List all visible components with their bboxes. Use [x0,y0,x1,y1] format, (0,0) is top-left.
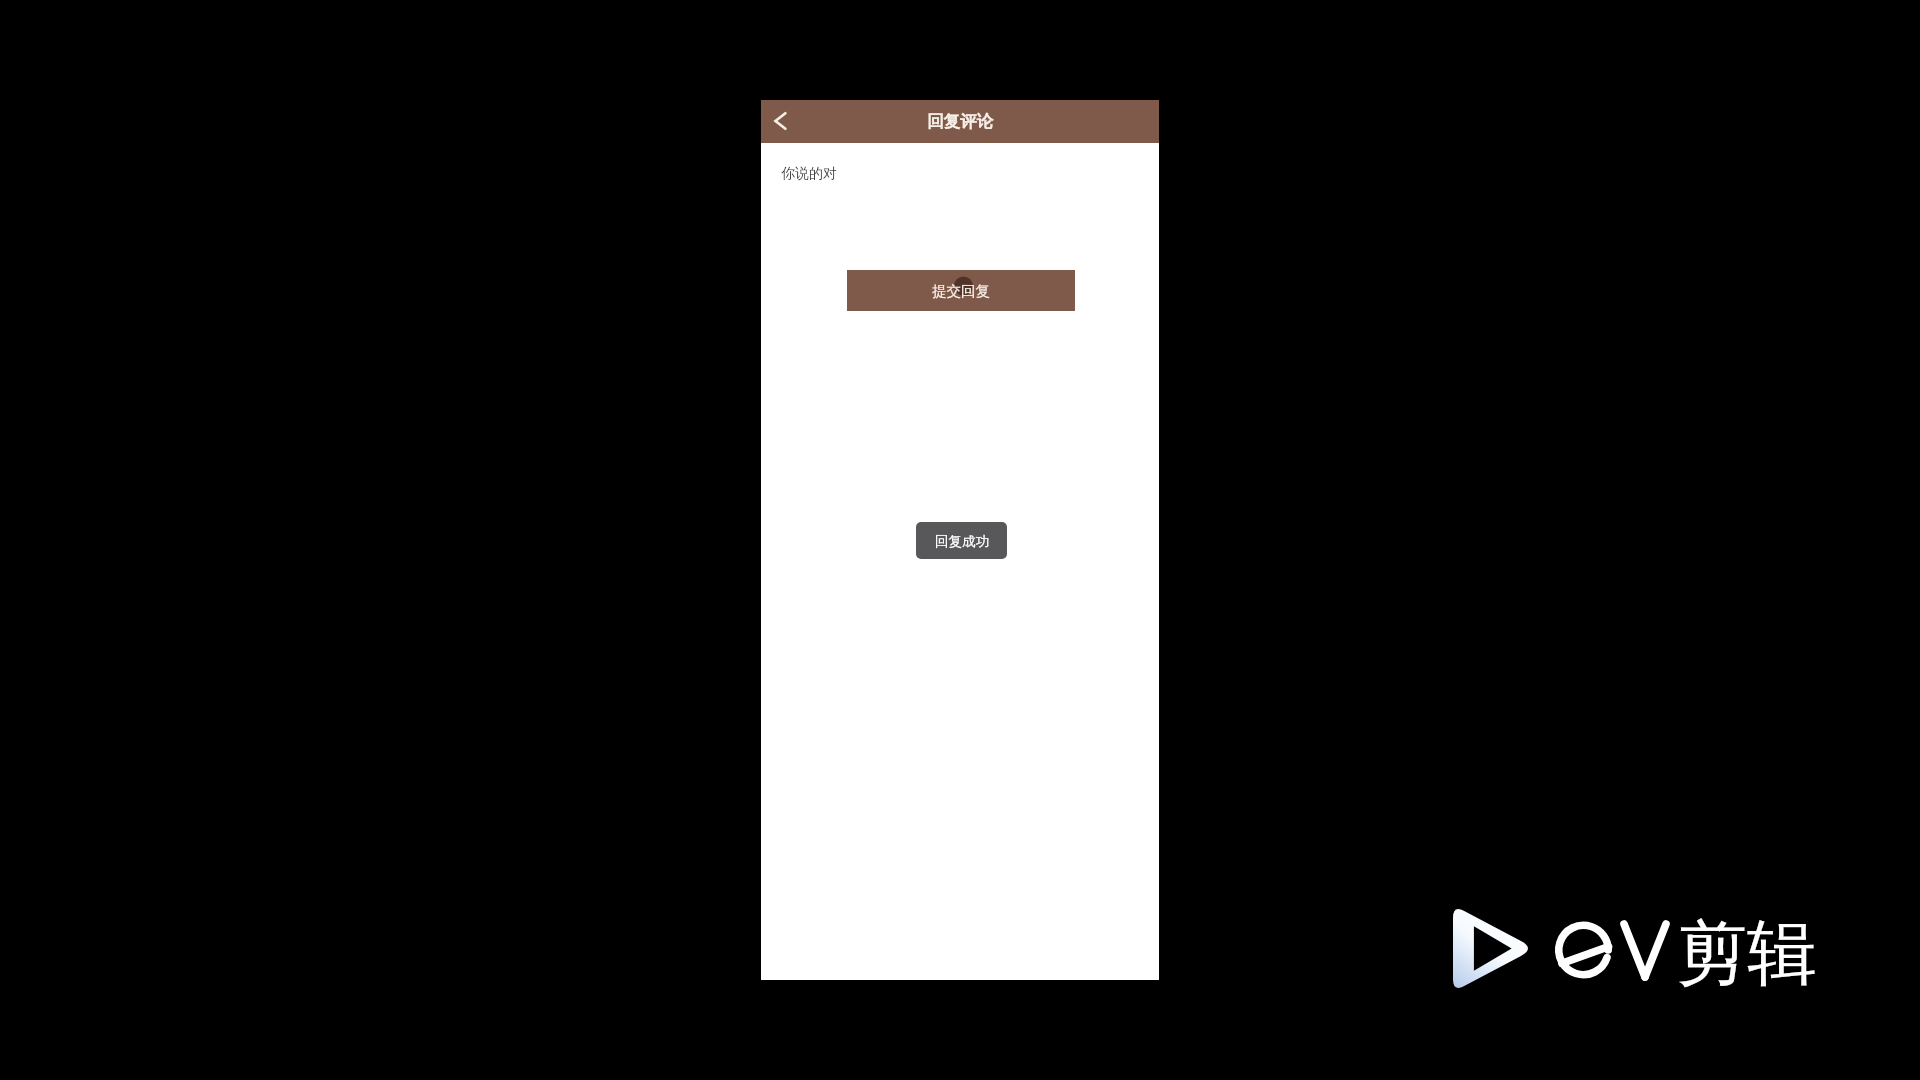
button[interactable]: 提交回复 [847,270,1075,311]
staticText: 回复评论 [927,111,993,132]
staticText: 回复成功 [935,533,989,550]
staticText: 剪辑 [1677,910,1817,998]
staticText: 提交回复 [932,282,990,300]
staticText: 你说的对 [781,165,837,183]
button[interactable]: Back [762,99,798,142]
other: EV recorder watermark [1453,905,1535,992]
